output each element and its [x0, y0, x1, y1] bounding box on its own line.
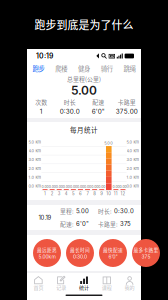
- staticText: 11: [114, 191, 118, 196]
- staticText: 5: [72, 191, 75, 196]
- staticText: 1: [40, 108, 43, 115]
- staticText: 0.0 km: [28, 184, 41, 188]
- staticText: 8: [93, 191, 96, 196]
- staticText: 5.00: [71, 83, 97, 98]
- staticText: 0:30.0: [73, 254, 87, 260]
- button[interactable]: 爬楼: [50, 63, 73, 74]
- staticText: 配速: [92, 98, 104, 106]
- staticText: 5.00: [74, 207, 89, 215]
- staticText: 375: [141, 254, 150, 260]
- staticText: 3.0 km: [126, 157, 139, 162]
- staticText: 1.0 km: [126, 175, 139, 180]
- button[interactable]: 记录: [50, 275, 73, 292]
- staticText: 骑行: [101, 64, 113, 73]
- button[interactable]: 健身: [73, 63, 95, 74]
- staticText: 6'0": [108, 254, 117, 260]
- staticText: 健身: [78, 64, 90, 73]
- staticText: 2: [51, 191, 54, 196]
- staticText: 配速:: [60, 220, 74, 228]
- staticText: 375: [118, 220, 131, 228]
- staticText: 6: [79, 191, 82, 196]
- staticText: 6'0": [74, 220, 89, 228]
- staticText: 0.00: [41, 185, 48, 189]
- staticText: 课程: [102, 284, 112, 291]
- staticText: 9: [100, 191, 103, 196]
- button[interactable]: 骑行: [95, 63, 118, 74]
- staticText: 3.0 km: [28, 157, 41, 162]
- staticText: 6'0": [92, 108, 105, 115]
- staticText: 最多卡路里: [133, 246, 158, 253]
- staticText: 5.00km: [38, 254, 55, 260]
- staticText: 最长时间: [70, 246, 90, 253]
- staticText: 1: [44, 191, 46, 196]
- button[interactable]: 课程: [95, 275, 118, 292]
- button[interactable]: 最长时间: [66, 239, 94, 267]
- staticText: 12: [120, 191, 125, 196]
- staticText: 跑步: [32, 64, 44, 73]
- staticText: 4: [65, 191, 68, 196]
- staticText: 时长: [64, 98, 76, 106]
- staticText: 375.00: [116, 108, 138, 115]
- staticText: 卡路里:: [98, 220, 118, 228]
- staticText: 0.00: [112, 185, 119, 189]
- staticText: 跳绳: [124, 64, 136, 73]
- button[interactable]: 首页: [27, 275, 50, 292]
- staticText: 我的: [125, 284, 135, 291]
- staticText: 0.00: [84, 185, 91, 189]
- staticText: 4.0 km: [28, 148, 41, 153]
- staticText: 0.0 km: [126, 184, 139, 188]
- button[interactable]: 跳绳: [118, 63, 141, 74]
- staticText: 0.00: [63, 185, 70, 189]
- staticText: 5.00: [104, 141, 113, 145]
- staticText: 最远距离: [37, 246, 57, 253]
- button[interactable]: 我的: [118, 275, 141, 292]
- staticText: 时长:: [98, 207, 112, 215]
- staticText: 里程:: [60, 207, 74, 215]
- staticText: 次数: [35, 98, 47, 106]
- staticText: 总里程(公里): [67, 75, 101, 83]
- staticText: 爬楼: [55, 64, 67, 73]
- staticText: 统计: [79, 284, 89, 291]
- staticText: 0:30.0: [60, 108, 80, 115]
- button[interactable]: 最快配速: [99, 239, 127, 267]
- staticText: 0.00: [49, 185, 56, 189]
- button[interactable]: 最远距离: [33, 239, 61, 267]
- staticText: 4.0 km: [126, 148, 139, 153]
- staticText: 2.0 km: [28, 166, 41, 171]
- staticText: 10.19: [38, 214, 51, 221]
- staticText: 0.00: [77, 185, 84, 189]
- button[interactable]: 统计: [73, 275, 95, 292]
- staticText: 每月统计: [70, 125, 98, 134]
- staticText: 0.00: [91, 185, 98, 189]
- staticText: 记录: [56, 284, 66, 291]
- staticText: 7: [86, 191, 88, 196]
- button[interactable]: 10.19: [27, 205, 141, 230]
- staticText: 0:30.0: [112, 207, 134, 215]
- staticText: 0.00: [70, 185, 77, 189]
- staticText: 5.0 km: [28, 140, 41, 144]
- staticText: 首页: [33, 284, 43, 291]
- button[interactable]: 跑步: [27, 63, 50, 74]
- staticText: 跑步到底是为了什么: [34, 17, 133, 32]
- staticText: 10: [106, 191, 111, 196]
- staticText: 0.00: [119, 185, 126, 189]
- button[interactable]: 最多卡路里: [132, 239, 160, 267]
- staticText: 1.0 km: [28, 175, 41, 180]
- staticText: 5.0 km: [126, 140, 139, 144]
- staticText: 最快配速: [103, 246, 123, 253]
- staticText: 2.0 km: [126, 166, 139, 171]
- staticText: 10:19: [36, 52, 53, 60]
- staticText: 3: [58, 191, 61, 196]
- staticText: 卡路里: [118, 98, 136, 106]
- staticText: 0.00: [56, 185, 63, 189]
- staticText: 0.00: [98, 185, 105, 189]
